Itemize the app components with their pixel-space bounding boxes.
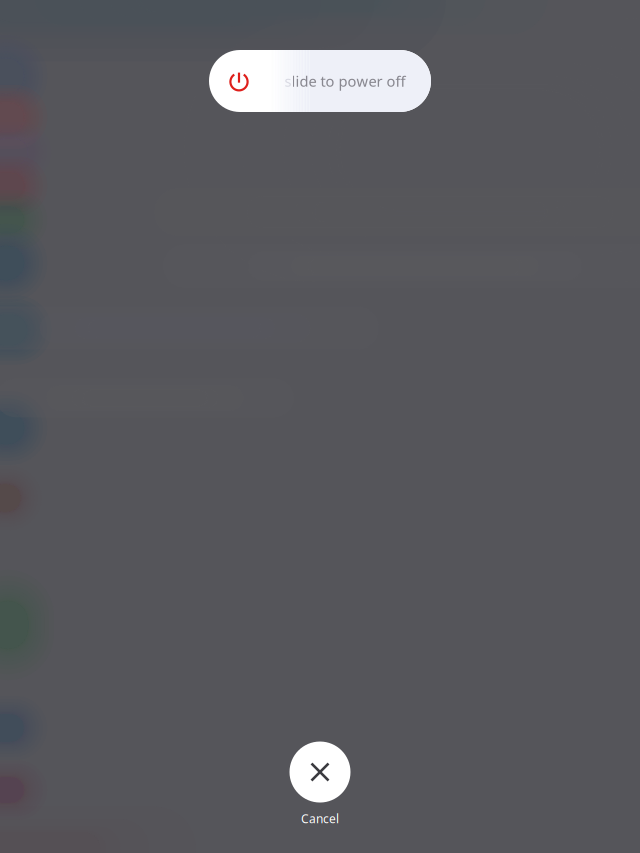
button[interactable]: s: [209, 50, 431, 112]
staticText: lide to power off: [291, 71, 405, 91]
staticText: Cancel: [301, 810, 339, 826]
button[interactable]: Cancel: [289, 741, 350, 826]
staticText: s: [284, 71, 291, 91]
